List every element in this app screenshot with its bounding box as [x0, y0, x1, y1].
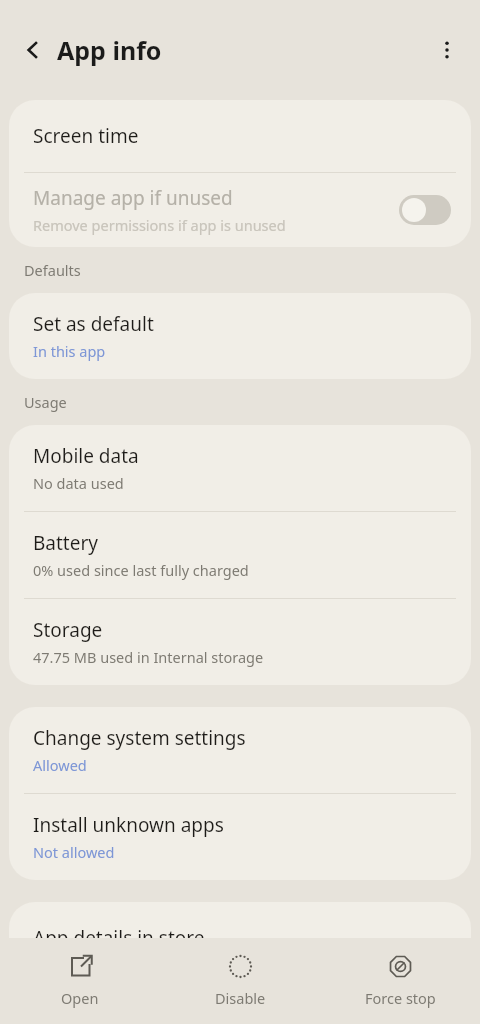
staticText: Set as default — [33, 311, 154, 337]
staticText: App info — [57, 33, 162, 67]
staticText: Storage — [33, 617, 103, 643]
other: Force stop — [388, 954, 413, 979]
staticText: Allowed — [33, 755, 87, 775]
staticText: 0% used since last fully charged — [33, 560, 249, 580]
staticText: Mobile data — [33, 443, 139, 469]
staticText: Remove permissions if app is unused — [33, 215, 286, 235]
staticText: Battery — [33, 530, 98, 556]
button[interactable]: More options — [423, 26, 471, 74]
button[interactable]: Open — [0, 938, 160, 1024]
button[interactable]: Mobile data — [9, 425, 471, 511]
other: Open — [68, 954, 93, 979]
staticText: Defaults — [24, 260, 81, 280]
button[interactable]: Storage — [9, 599, 471, 685]
button[interactable]: App details in store — [9, 902, 471, 974]
staticText: Not allowed — [33, 842, 115, 862]
button[interactable]: Force stop — [320, 938, 480, 1024]
other: Disable — [228, 954, 253, 979]
staticText: Change system settings — [33, 725, 246, 751]
staticText: In this app — [33, 341, 106, 361]
staticText: Manage app if unused — [33, 185, 233, 211]
button[interactable]: Battery — [9, 512, 471, 598]
button[interactable]: Back — [9, 26, 57, 74]
staticText: Disable — [215, 988, 266, 1008]
staticText: Usage — [24, 392, 67, 412]
staticText: Install unknown apps — [33, 812, 224, 838]
button[interactable]: Screen time — [9, 100, 471, 172]
staticText: App details in store — [33, 925, 205, 951]
button[interactable]: Disable — [160, 938, 320, 1024]
button[interactable]: Install unknown apps — [9, 794, 471, 880]
staticText: Force stop — [365, 988, 436, 1008]
staticText: 47.75 MB used in Internal storage — [33, 647, 264, 667]
button[interactable]: Change system settings — [9, 707, 471, 793]
button[interactable]: Manage app if unused — [9, 173, 471, 247]
staticText: Screen time — [33, 123, 139, 149]
button[interactable]: Set as default — [9, 293, 471, 379]
staticText: No data used — [33, 473, 124, 493]
staticText: Open — [61, 988, 99, 1008]
